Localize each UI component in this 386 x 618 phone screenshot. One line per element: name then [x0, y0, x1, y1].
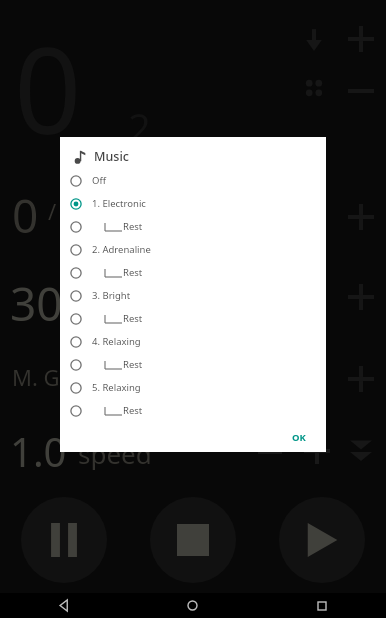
button[interactable]: Home [128, 593, 257, 618]
staticText: Rest [123, 358, 143, 371]
staticText: 1. Electronic [92, 197, 146, 210]
staticText: 0 [14, 8, 82, 138]
staticText: Music [94, 148, 129, 165]
button[interactable]: Rest [60, 353, 326, 376]
staticText: Rest [123, 220, 143, 233]
button[interactable]: Rest [60, 261, 326, 284]
staticText: Off [92, 174, 106, 187]
button[interactable]: 4. Relaxing [60, 330, 326, 353]
staticText: 30 [10, 272, 63, 335]
staticText: M. G [12, 362, 60, 392]
button[interactable]: Pause [21, 497, 107, 583]
staticText: OK [292, 431, 306, 444]
staticText: 5. Relaxing [92, 381, 141, 394]
staticText: speed [78, 436, 152, 471]
button[interactable]: Scroll down [340, 430, 382, 472]
button[interactable]: 2. Adrenaline [60, 238, 326, 261]
staticText: 2. Adrenaline [92, 243, 151, 256]
button[interactable]: Rest [60, 399, 326, 422]
staticText: Rest [123, 266, 143, 279]
button[interactable]: 5. Relaxing [60, 376, 326, 399]
staticText: 2 [128, 100, 151, 154]
button[interactable]: Decrease [340, 70, 382, 112]
staticText: / [48, 196, 57, 226]
button[interactable]: 1. Electronic [60, 192, 326, 215]
button[interactable]: Increase [340, 358, 382, 400]
button[interactable]: Stop [150, 497, 236, 583]
button[interactable]: Back [0, 593, 128, 618]
staticText: 0 [12, 184, 39, 247]
staticText: Rest [123, 404, 143, 417]
staticText: 4. Relaxing [92, 335, 141, 348]
staticText: 1.0 [10, 424, 67, 478]
staticText: 3. Bright [92, 289, 131, 302]
button[interactable]: Grid [294, 68, 334, 108]
button[interactable]: Move down [294, 20, 334, 60]
button[interactable]: Off [60, 169, 326, 192]
button[interactable]: OK [286, 427, 312, 448]
button[interactable]: Recent apps [257, 593, 386, 618]
button[interactable]: Increase [340, 18, 382, 60]
button[interactable]: Decrease speed [250, 432, 290, 472]
button[interactable]: Increase [340, 196, 382, 238]
staticText: Rest [123, 312, 143, 325]
button[interactable]: Increase [340, 276, 382, 318]
button[interactable]: Increase speed [296, 430, 338, 472]
button[interactable]: 3. Bright [60, 284, 326, 307]
button[interactable]: Rest [60, 307, 326, 330]
button[interactable]: Rest [60, 215, 326, 238]
button[interactable]: Play [279, 497, 365, 583]
